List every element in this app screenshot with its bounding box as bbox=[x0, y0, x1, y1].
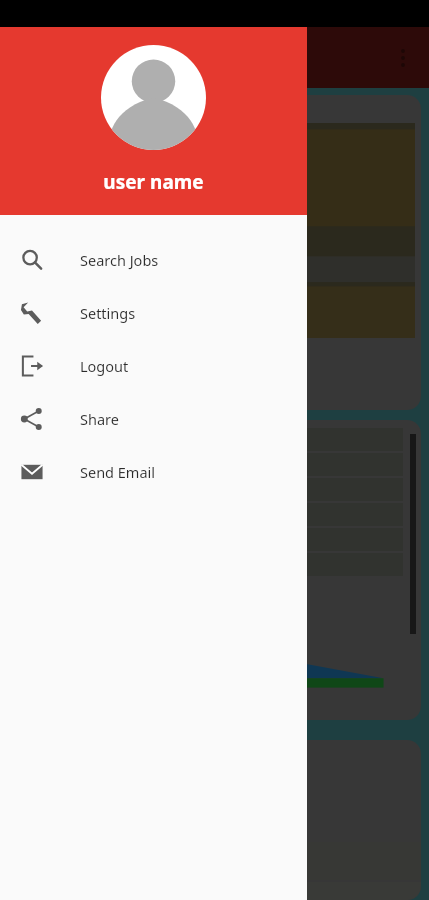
button[interactable]: Search Jobs bbox=[0, 233, 307, 286]
button[interactable]: Share bbox=[0, 392, 307, 445]
button[interactable] bbox=[8, 740, 421, 900]
button[interactable]: Send Email bbox=[0, 445, 307, 498]
button[interactable]: ELECTION bbox=[8, 420, 421, 720]
button[interactable]: Logout bbox=[0, 339, 307, 392]
staticText: Search Jobs bbox=[80, 250, 159, 270]
button[interactable]: Company bbox=[8, 95, 421, 410]
button[interactable]: Settings bbox=[0, 286, 307, 339]
staticText: Share bbox=[80, 409, 119, 429]
staticText: Send Email bbox=[80, 462, 156, 482]
staticText: Logout bbox=[80, 356, 129, 376]
staticText: user name bbox=[0, 169, 307, 195]
staticText: Settings bbox=[80, 303, 136, 323]
